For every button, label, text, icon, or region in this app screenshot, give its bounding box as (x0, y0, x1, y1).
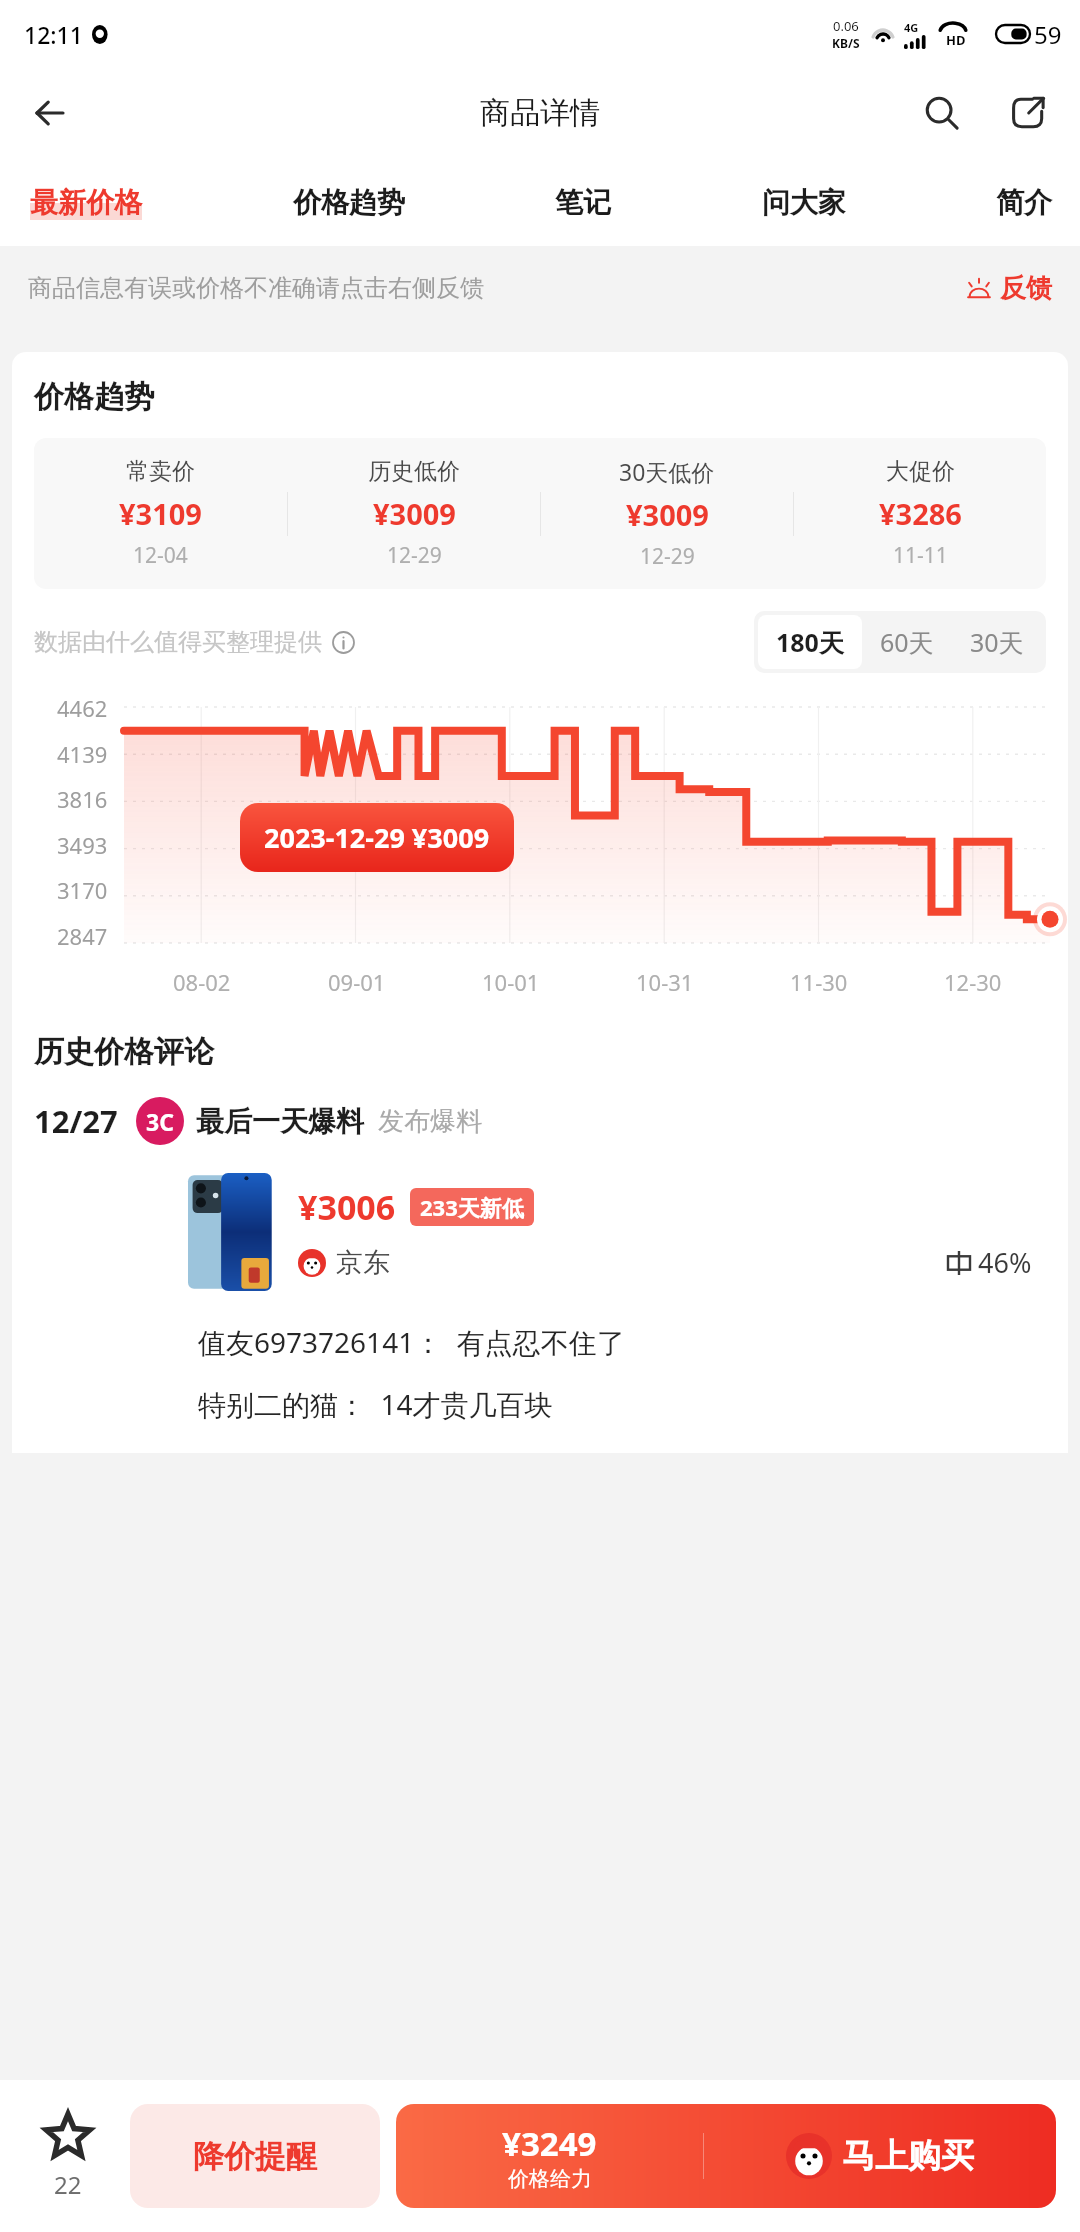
button[interactable]: Info (332, 631, 355, 654)
button[interactable]: Favorite (20, 2080, 116, 2232)
staticText: 反馈 (1000, 272, 1052, 305)
staticText: 最后一天爆料 (196, 1104, 364, 1139)
staticText: 3C (146, 1106, 174, 1137)
staticText: 数据由什么值得买整理提供 (34, 627, 322, 657)
staticText: 10-31 (636, 967, 694, 997)
staticText: 降价提醒 (193, 2137, 317, 2176)
button[interactable]: 价格趋势 (293, 185, 405, 220)
button[interactable]: 问大家 (762, 185, 846, 220)
staticText: ¥3009 (373, 494, 456, 533)
staticText: 2847 (57, 921, 108, 951)
staticText: HD (946, 31, 966, 49)
staticText: 常卖价 (126, 457, 195, 486)
button[interactable]: 简介 (996, 185, 1052, 220)
staticText: 12-30 (944, 967, 1002, 997)
button[interactable]: 30天 (952, 615, 1042, 669)
staticText: 12-04 (133, 541, 188, 570)
staticText: 09-01 (328, 967, 386, 997)
staticText: 2023-12-29 ¥3009 (264, 819, 490, 856)
staticText: 历史价格评论 (34, 1033, 214, 1071)
staticText: 价格趋势 (34, 378, 154, 416)
staticText: 3493 (57, 830, 108, 860)
staticText: 价格趋势 (293, 185, 405, 220)
staticText: 08-02 (173, 967, 231, 997)
staticText: 4G (904, 20, 919, 35)
button[interactable]: 反馈 (966, 272, 1052, 305)
staticText: 12:11 (24, 19, 83, 50)
staticText: 发布爆料 (378, 1105, 482, 1138)
staticText: 笔记 (555, 185, 611, 220)
staticText: 46% (978, 1244, 1032, 1281)
staticText: 简介 (996, 185, 1052, 220)
staticText: 59 (1034, 18, 1062, 51)
button[interactable]: Search (906, 77, 978, 149)
staticText: KB/S (832, 35, 860, 51)
staticText: ¥3109 (119, 494, 202, 533)
staticText: 3170 (57, 875, 108, 905)
staticText: 价格给力 (508, 2166, 592, 2192)
staticText: 22 (54, 2168, 82, 2201)
staticText: ¥3009 (626, 495, 709, 534)
staticText: ¥3286 (879, 494, 962, 533)
button[interactable]: 最新价格 (30, 185, 142, 220)
staticText: 商品详情 (480, 94, 600, 132)
button[interactable]: ¥3249 (396, 2104, 1056, 2208)
staticText: 4139 (57, 739, 108, 769)
staticText: 30天 (970, 625, 1024, 659)
staticText: 233天新低 (420, 1192, 524, 1222)
staticText: 马上购买 (842, 2135, 974, 2177)
staticText: ¥3249 (502, 2121, 597, 2166)
staticText: 11-11 (893, 541, 948, 570)
button[interactable]: Back (14, 77, 86, 149)
staticText: 11-30 (790, 967, 848, 997)
staticText: 商品信息有误或价格不准确请点击右侧反馈 (28, 273, 484, 303)
staticText: 12-29 (640, 542, 695, 571)
staticText: 大促价 (886, 457, 955, 486)
button[interactable]: 60天 (862, 615, 952, 669)
staticText: 问大家 (762, 185, 846, 220)
button[interactable]: 笔记 (555, 185, 611, 220)
staticText: 10-01 (482, 967, 540, 997)
staticText: 历史低价 (368, 457, 460, 486)
button[interactable]: 180天 (758, 615, 862, 669)
staticText: 值友6973726141： 有点忍不住了 (198, 1323, 625, 1361)
button[interactable]: 降价提醒 (130, 2104, 380, 2208)
button[interactable]: Share (992, 77, 1064, 149)
staticText: 30天低价 (619, 456, 715, 487)
staticText: 12-29 (387, 541, 442, 570)
staticText: 特别二的猫： 14才贵几百块 (198, 1385, 553, 1423)
staticText: 最新价格 (30, 185, 142, 220)
staticText: 0.06 (833, 17, 859, 35)
staticText: 3816 (57, 784, 108, 814)
staticText: 60天 (880, 625, 934, 659)
staticText: 180天 (776, 625, 844, 659)
staticText: 12/27 (34, 1100, 118, 1142)
button[interactable]: ¥3006 (182, 1167, 1038, 1297)
staticText: 京东 (336, 1246, 390, 1280)
staticText: 4462 (57, 693, 108, 723)
staticText: ¥3006 (298, 1184, 396, 1230)
